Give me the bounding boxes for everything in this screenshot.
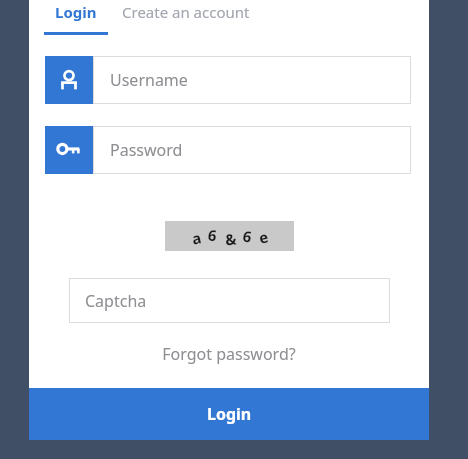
staticText: 6 [207,224,218,246]
staticText: e [257,226,270,248]
button[interactable]: Password [45,126,411,174]
other: Captcha image [165,221,294,251]
staticText: Login [207,403,252,425]
button[interactable]: Username [45,56,411,104]
staticText: Create an account [122,2,250,22]
button[interactable]: Captcha [69,278,390,323]
staticText: Username [110,69,188,91]
staticText: Forgot password? [162,343,296,365]
other: Username [45,56,93,104]
staticText: Captcha [85,290,147,312]
button[interactable]: Login [29,388,429,440]
staticText: & [224,228,238,249]
other: Password [45,126,93,174]
button[interactable]: Login [44,0,108,35]
staticText: a [190,227,203,249]
staticText: Login [55,2,97,22]
staticText: Password [110,139,183,161]
staticText: 6 [241,225,254,247]
button[interactable]: Forgot password? [154,341,304,367]
button[interactable]: Create an account [120,0,252,35]
